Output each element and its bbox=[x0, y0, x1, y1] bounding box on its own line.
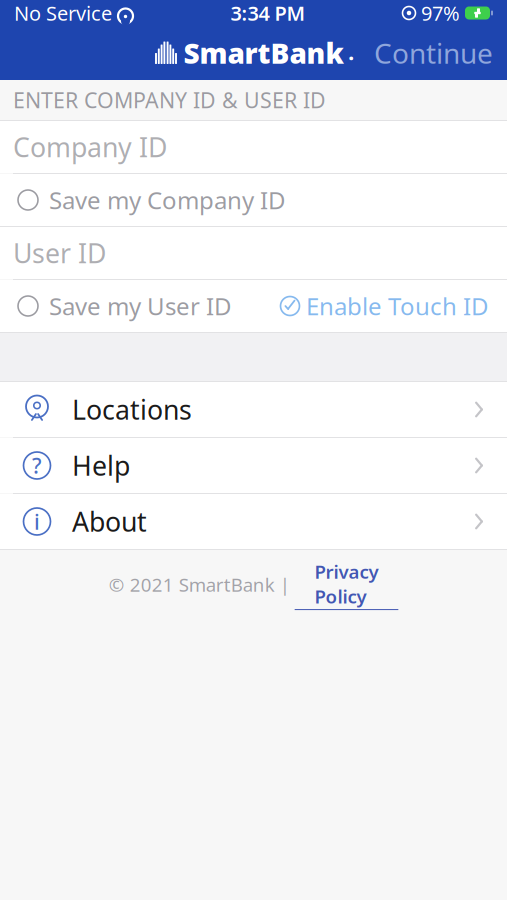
staticText: Save my User ID bbox=[49, 290, 232, 322]
staticText: User ID bbox=[13, 235, 106, 271]
button[interactable]: Save my Company ID bbox=[0, 174, 507, 226]
staticText: About bbox=[72, 504, 147, 539]
staticText: 97% bbox=[421, 0, 460, 26]
staticText: ENTER COMPANY ID & USER ID bbox=[13, 86, 326, 114]
staticText: i bbox=[34, 507, 40, 536]
staticText: Locations bbox=[72, 392, 192, 427]
staticText: Privacy Policy bbox=[314, 559, 378, 609]
button[interactable]: Company ID bbox=[0, 121, 507, 173]
staticText: Save my Company ID bbox=[49, 184, 286, 216]
staticText: Company ID bbox=[13, 129, 167, 165]
button[interactable]: ? bbox=[0, 438, 507, 493]
staticText: No Service bbox=[14, 0, 112, 26]
staticText: © 2021 SmartBank | bbox=[109, 572, 290, 597]
button[interactable]: Locations bbox=[0, 382, 507, 437]
staticText: 3:34 PM bbox=[230, 0, 305, 26]
button[interactable]: i bbox=[0, 494, 507, 549]
staticText: Help bbox=[72, 448, 130, 483]
button[interactable]: User ID bbox=[0, 227, 507, 279]
staticText: Continue bbox=[374, 34, 493, 72]
staticText: ? bbox=[32, 451, 42, 480]
staticText: SmartBank bbox=[183, 34, 343, 72]
staticText: Enable Touch ID bbox=[306, 290, 489, 322]
staticText: . bbox=[348, 41, 353, 65]
button[interactable]: Save my User ID bbox=[0, 280, 507, 332]
button[interactable]: Continue bbox=[360, 25, 507, 81]
button[interactable]: Privacy Policy bbox=[290, 559, 398, 610]
